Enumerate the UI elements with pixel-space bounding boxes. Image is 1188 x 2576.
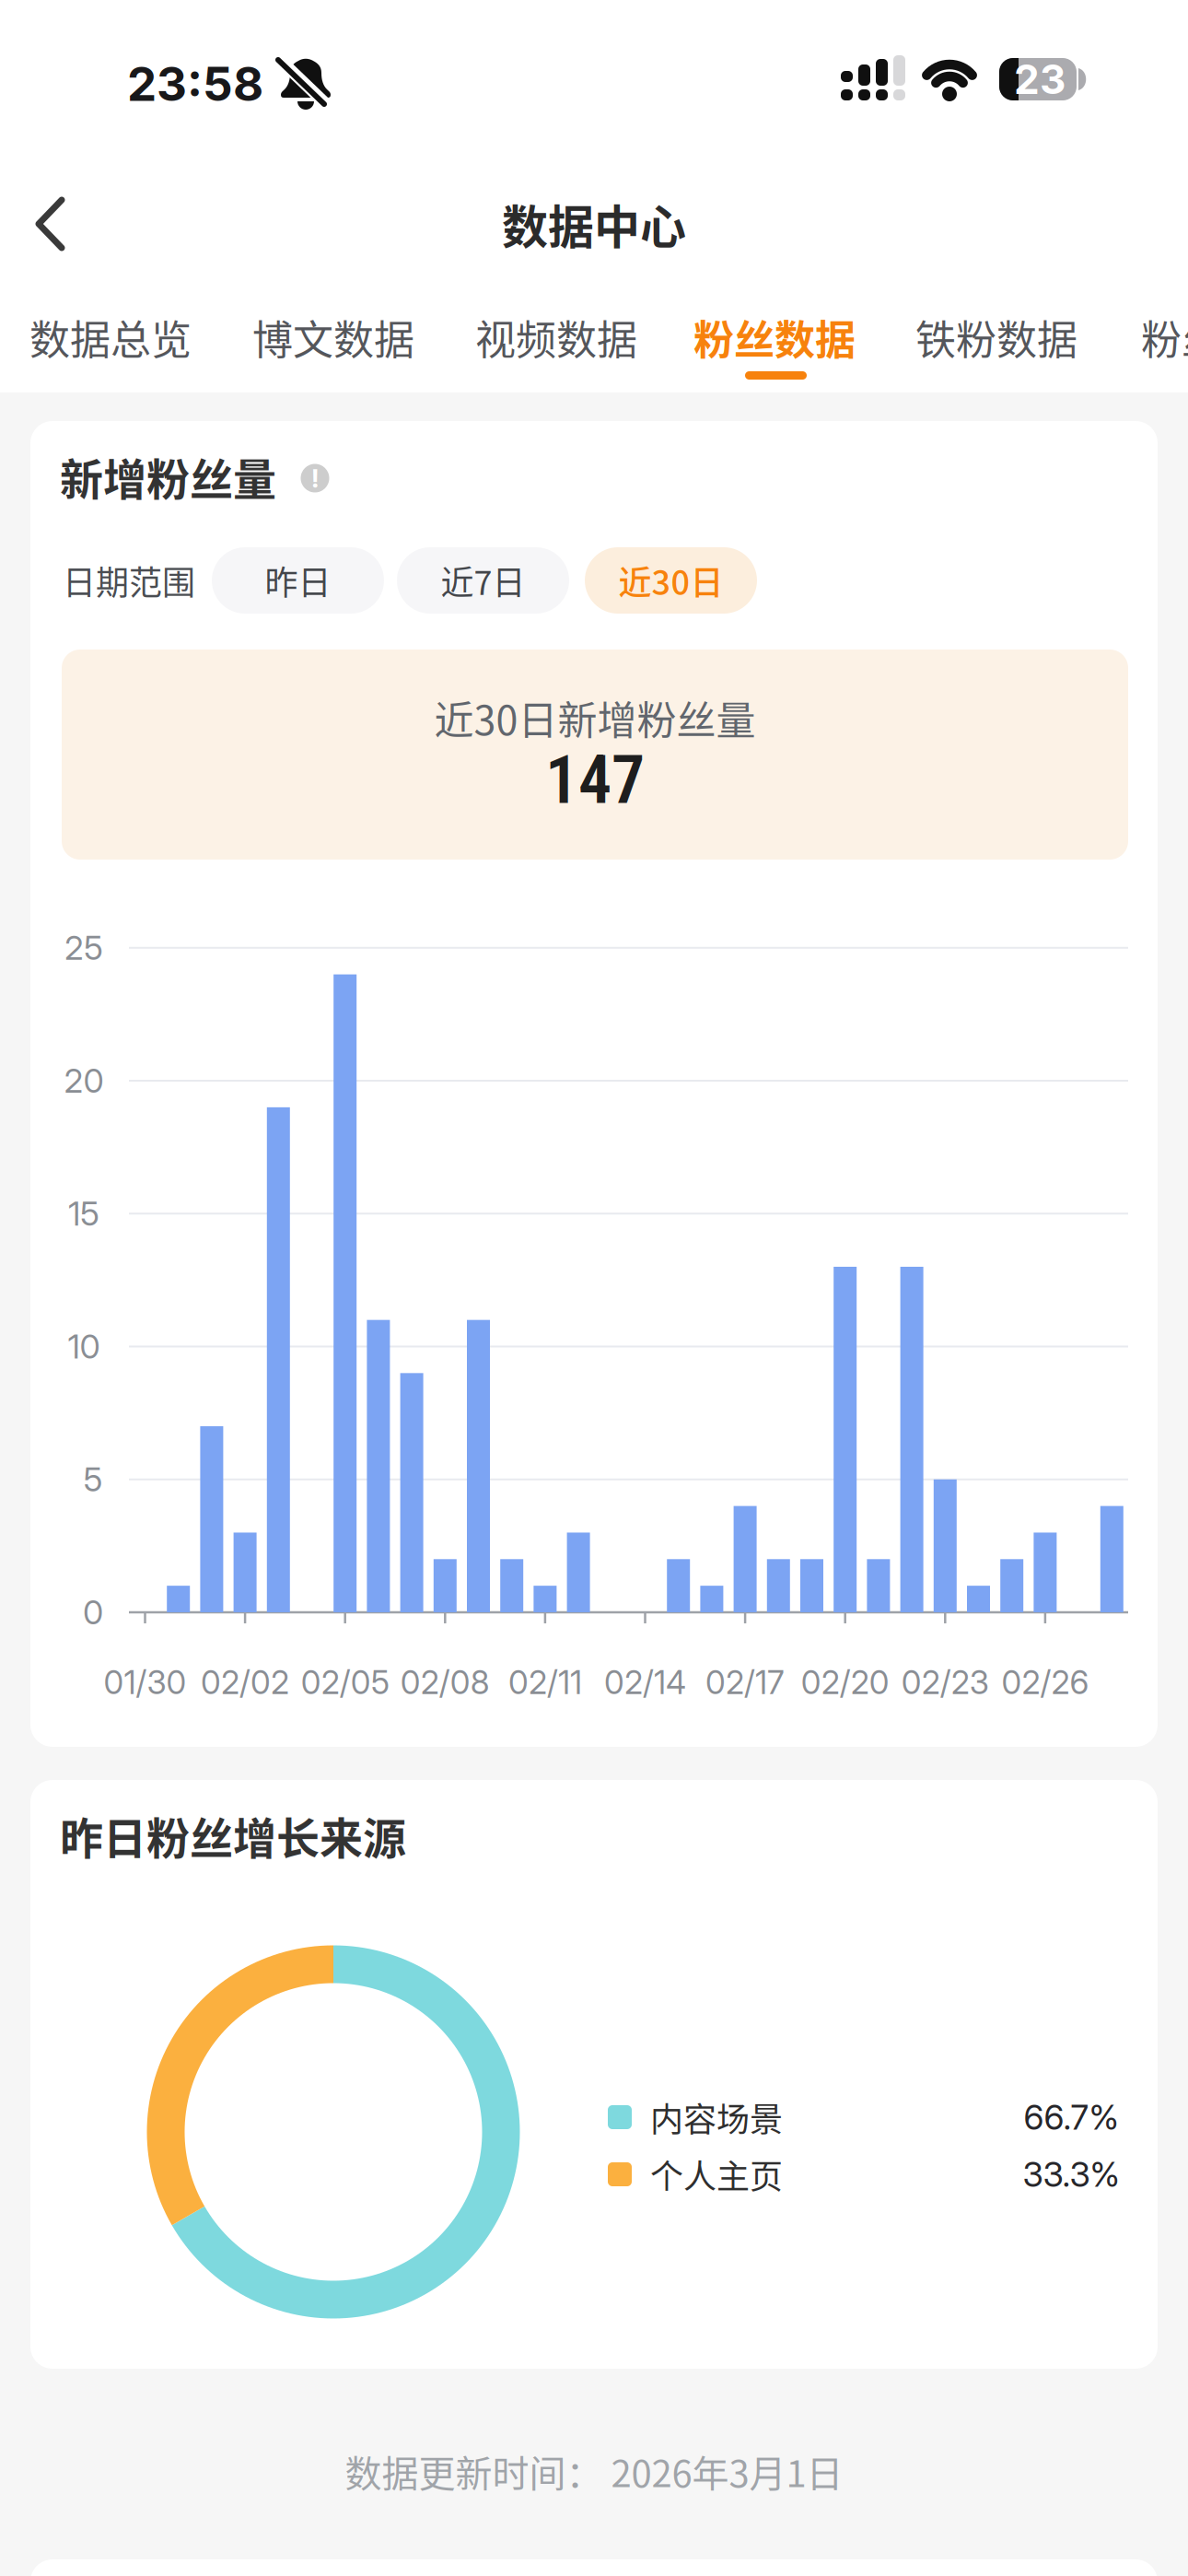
staticText: 25: [64, 928, 103, 968]
staticText: 数据更新时间： 2026年3月1日: [345, 2444, 843, 2498]
staticText: 02/20: [801, 1663, 889, 1702]
button[interactable]: 近30日: [585, 547, 757, 614]
staticText: 博文数据: [252, 308, 414, 366]
staticText: 近30日: [618, 556, 723, 604]
staticText: 10: [68, 1326, 100, 1367]
staticText: 02/23: [901, 1663, 989, 1702]
button[interactable]: 昨日: [212, 547, 384, 614]
staticText: 66.7%: [1024, 2097, 1118, 2138]
staticText: 数据总览: [29, 308, 192, 366]
staticText: 15: [68, 1194, 99, 1234]
staticText: 近30日新增粉丝量: [434, 689, 756, 746]
staticText: 昨日粉丝增长来源: [60, 1804, 406, 1867]
staticText: 02/11: [508, 1663, 582, 1702]
staticText: 02/14: [604, 1663, 686, 1702]
button[interactable]: 视频数据: [460, 284, 652, 390]
button[interactable]: Info: [301, 463, 329, 494]
staticText: 02/26: [1001, 1663, 1089, 1702]
staticText: 粉丝数据: [693, 308, 856, 366]
staticText: 02/08: [400, 1663, 490, 1702]
staticText: 0: [83, 1592, 103, 1632]
button[interactable]: 粉丝数据: [679, 284, 870, 390]
staticText: 内容场景: [650, 2093, 783, 2141]
staticText: 23:58: [127, 55, 263, 112]
staticText: 33.3%: [1023, 2154, 1119, 2195]
staticText: 昨日: [265, 556, 331, 604]
staticText: 01/30: [104, 1663, 186, 1702]
button[interactable]: 近7日: [397, 547, 569, 614]
staticText: 23: [1014, 55, 1066, 104]
staticText: 近7日: [441, 556, 525, 604]
staticText: 02/05: [301, 1663, 389, 1702]
staticText: 02/17: [706, 1663, 785, 1702]
staticText: 数据中心: [502, 191, 686, 257]
staticText: 铁粉数据: [915, 308, 1077, 366]
staticText: 粉丝贡献: [1141, 308, 1188, 366]
button[interactable]: 博文数据: [238, 284, 429, 390]
staticText: 视频数据: [475, 308, 637, 366]
button[interactable]: 粉丝贡献: [1126, 284, 1188, 390]
staticText: 02/02: [201, 1663, 289, 1702]
staticText: 个人主页: [650, 2150, 783, 2198]
staticText: 日期范围: [63, 556, 195, 604]
staticText: !: [311, 463, 319, 494]
button[interactable]: 数据总览: [15, 284, 206, 390]
staticText: 新增粉丝量: [60, 445, 276, 508]
staticText: 20: [64, 1061, 104, 1101]
staticText: 147: [545, 741, 645, 819]
staticText: 5: [83, 1459, 103, 1500]
button[interactable]: 铁粉数据: [901, 284, 1092, 390]
